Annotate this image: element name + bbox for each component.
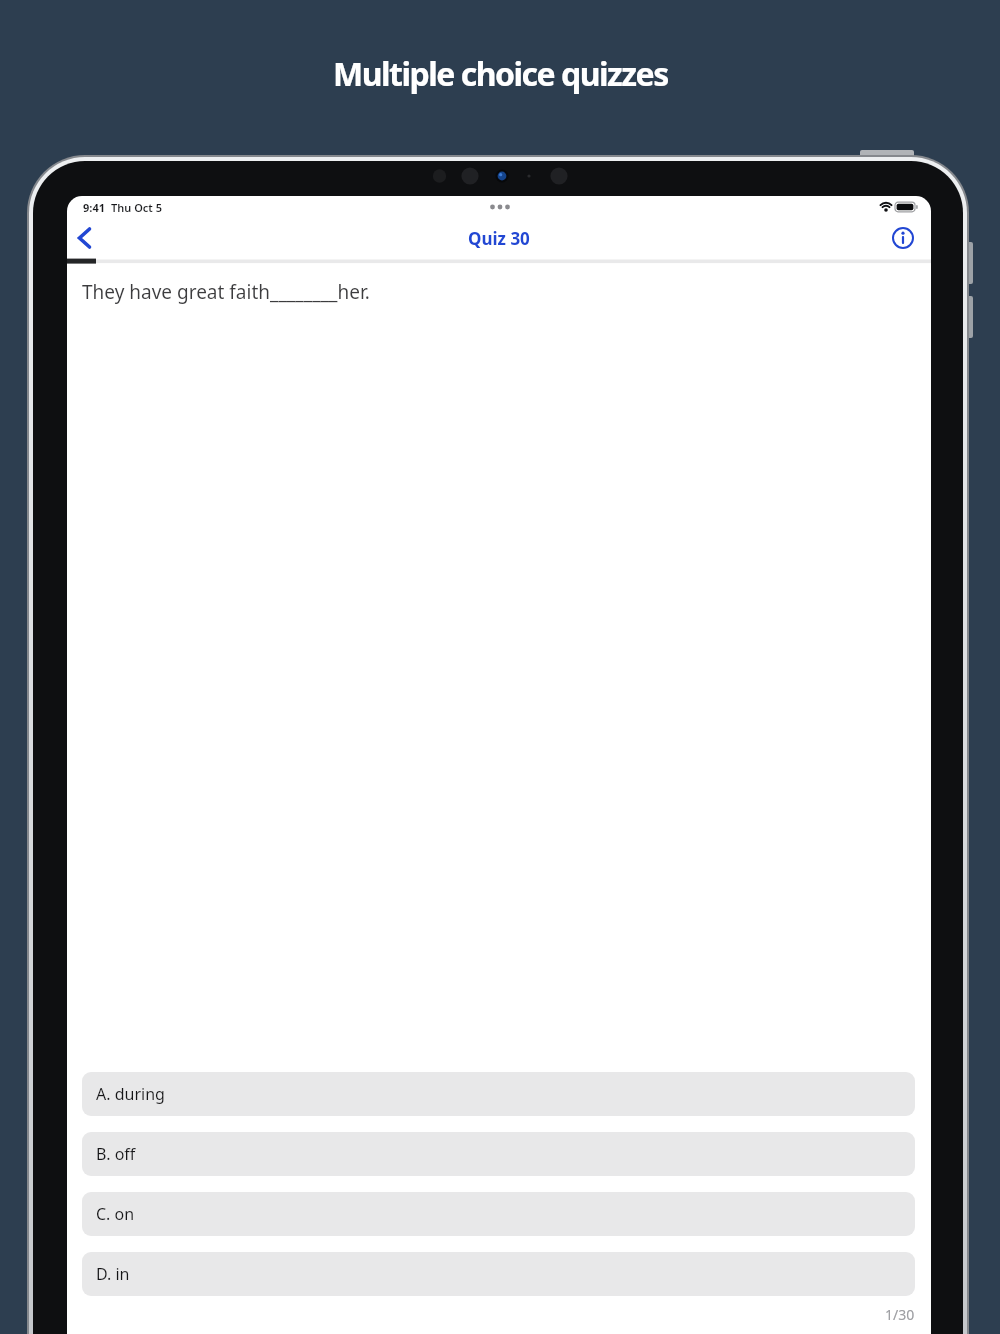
button[interactable]: A. during [82,1072,915,1116]
button[interactable]: B. off [82,1132,915,1176]
staticText: A. during [96,1083,165,1105]
button[interactable]: C. on [82,1192,915,1236]
staticText: C. on [96,1203,135,1225]
staticText: 9:41 [83,200,105,215]
staticText: They have great faith________her. [82,279,370,305]
staticText: Multiple choice quizzes [333,52,668,96]
staticText: Thu Oct 5 [111,200,162,215]
button[interactable]: D. in [82,1252,915,1296]
staticText: Quiz 30 [468,227,530,250]
button[interactable] [71,222,103,254]
staticText: B. off [96,1143,136,1165]
button[interactable] [887,222,919,254]
staticText: 1/30 [885,1305,915,1324]
staticText: D. in [96,1263,130,1285]
